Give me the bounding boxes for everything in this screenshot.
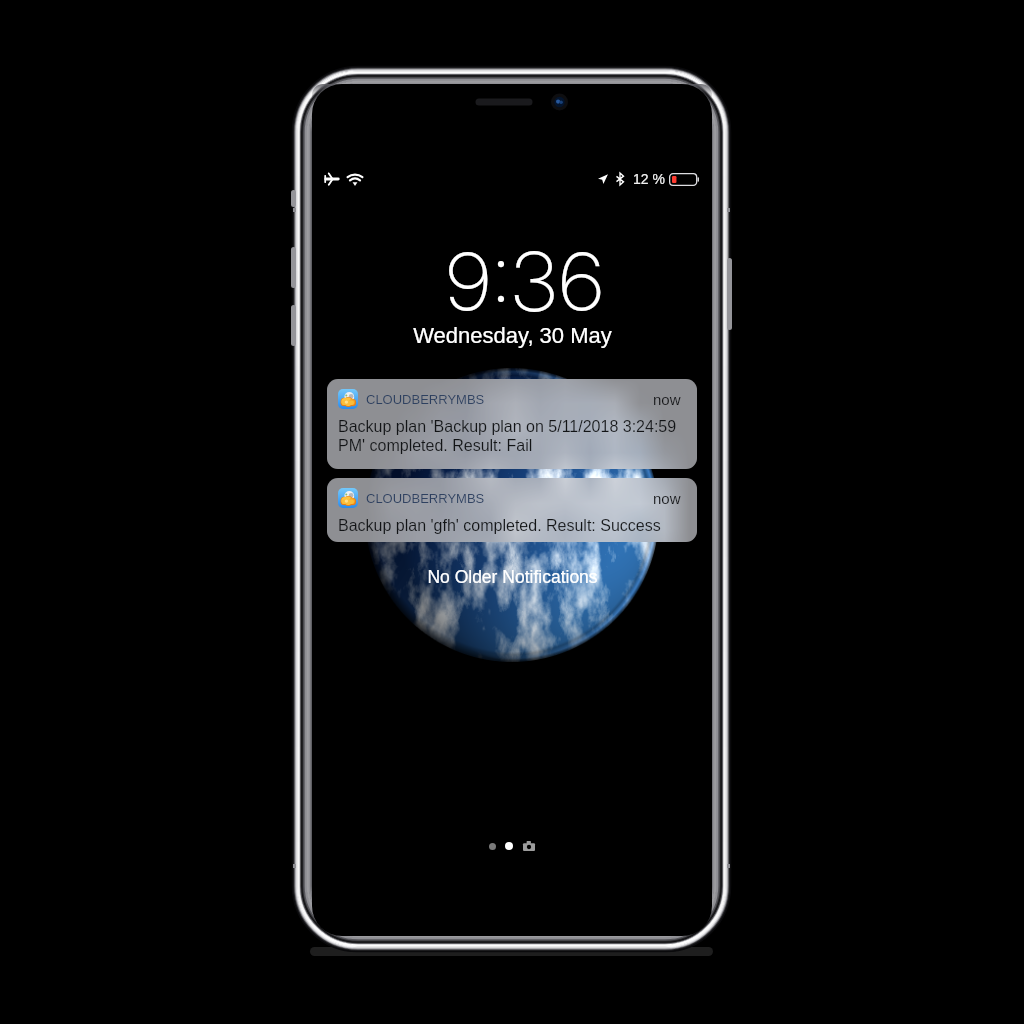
button[interactable]: Camera — [522, 839, 536, 853]
button[interactable]: CLOUDBERRYMBS — [327, 478, 697, 542]
staticText: now — [653, 391, 681, 408]
staticText: CLOUDBERRYMBS — [366, 392, 485, 407]
staticText: No Older Notifications — [427, 567, 598, 587]
staticText: now — [653, 490, 681, 507]
staticText: CLOUDBERRYMBS — [366, 491, 485, 506]
staticText: Backup plan 'gfh' completed. Result: Suc… — [338, 517, 661, 535]
staticText: Wednesday, 30 May — [413, 323, 612, 348]
button[interactable]: CLOUDBERRYMBS — [327, 379, 697, 469]
staticText: 9:36 — [446, 233, 606, 331]
staticText: Backup plan 'Backup plan on 5/11/2018 3:… — [338, 418, 677, 455]
staticText: 12 % — [633, 171, 665, 187]
